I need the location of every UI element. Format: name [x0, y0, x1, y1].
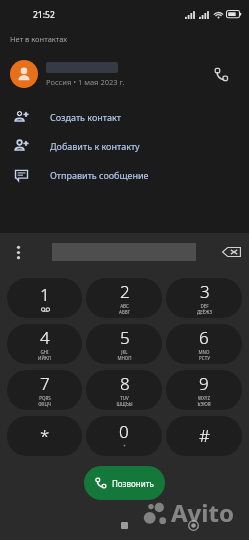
- staticText: 7: [40, 372, 50, 395]
- staticText: 5: [120, 326, 130, 349]
- staticText: Создать контакт: [50, 111, 121, 123]
- button[interactable]: Главный экран: [111, 512, 137, 538]
- staticText: АБВГ: [119, 309, 130, 315]
- button[interactable]: Дополнительно: [6, 240, 30, 264]
- staticText: GHI: [40, 349, 49, 355]
- staticText: Добавить к контакту: [50, 140, 140, 152]
- button[interactable]: #: [166, 416, 242, 456]
- button[interactable]: 0: [86, 416, 162, 456]
- staticText: 3: [200, 280, 210, 303]
- staticText: МНОП: [117, 355, 132, 361]
- staticText: MNO: [198, 349, 210, 355]
- staticText: 8: [120, 372, 130, 395]
- staticText: Позвонить: [112, 478, 154, 489]
- button[interactable]: 7: [7, 370, 82, 410]
- button[interactable]: Позвонить: [203, 56, 239, 92]
- button[interactable]: 9: [166, 370, 242, 410]
- staticText: Avito: [171, 496, 234, 529]
- staticText: *: [40, 424, 50, 447]
- button[interactable]: Добавить к контакту: [0, 131, 249, 160]
- button[interactable]: 8: [86, 370, 162, 410]
- staticText: 4: [40, 326, 50, 349]
- button[interactable]: Создать контакт: [0, 102, 249, 131]
- staticText: 2: [120, 280, 130, 303]
- staticText: ФХЦЧ: [38, 401, 51, 407]
- staticText: 0: [119, 420, 129, 443]
- staticText: Россия • 1 мая 2023 г.: [46, 77, 125, 87]
- staticText: РСТУ: [199, 355, 210, 361]
- staticText: 21:52: [33, 9, 55, 21]
- staticText: ШЩЪЫ: [116, 401, 133, 407]
- staticText: ABC: [120, 303, 129, 309]
- staticText: +: [123, 443, 126, 450]
- button[interactable]: Стереть: [215, 236, 247, 268]
- staticText: Нет в контактах: [10, 34, 68, 44]
- button[interactable]: *: [7, 416, 82, 456]
- button[interactable]: 5: [86, 324, 162, 364]
- button[interactable]: 2: [86, 278, 162, 318]
- button[interactable]: Обзор: [180, 512, 206, 538]
- button[interactable]: 1: [7, 278, 82, 318]
- button[interactable]: 6: [166, 324, 242, 364]
- staticText: 9: [199, 372, 209, 395]
- staticText: 6: [199, 326, 209, 349]
- staticText: ИЙКЛ: [38, 355, 51, 361]
- staticText: 1: [40, 283, 50, 306]
- button[interactable]: Отправить сообщение: [0, 160, 249, 189]
- staticText: Отправить сообщение: [50, 169, 149, 181]
- staticText: JKL: [121, 349, 128, 355]
- staticText: ДЕЁЖЗ: [197, 309, 212, 315]
- staticText: TUV: [120, 395, 129, 401]
- staticText: #: [199, 424, 210, 447]
- staticText: DEF: [200, 303, 209, 309]
- button[interactable]: 3: [166, 278, 242, 318]
- button[interactable]: 4: [7, 324, 82, 364]
- staticText: PQRS: [39, 395, 51, 401]
- staticText: WXYZ: [198, 395, 210, 401]
- staticText: ЬЭЮЯ: [197, 401, 211, 407]
- button[interactable]: Позвонить: [84, 466, 165, 500]
